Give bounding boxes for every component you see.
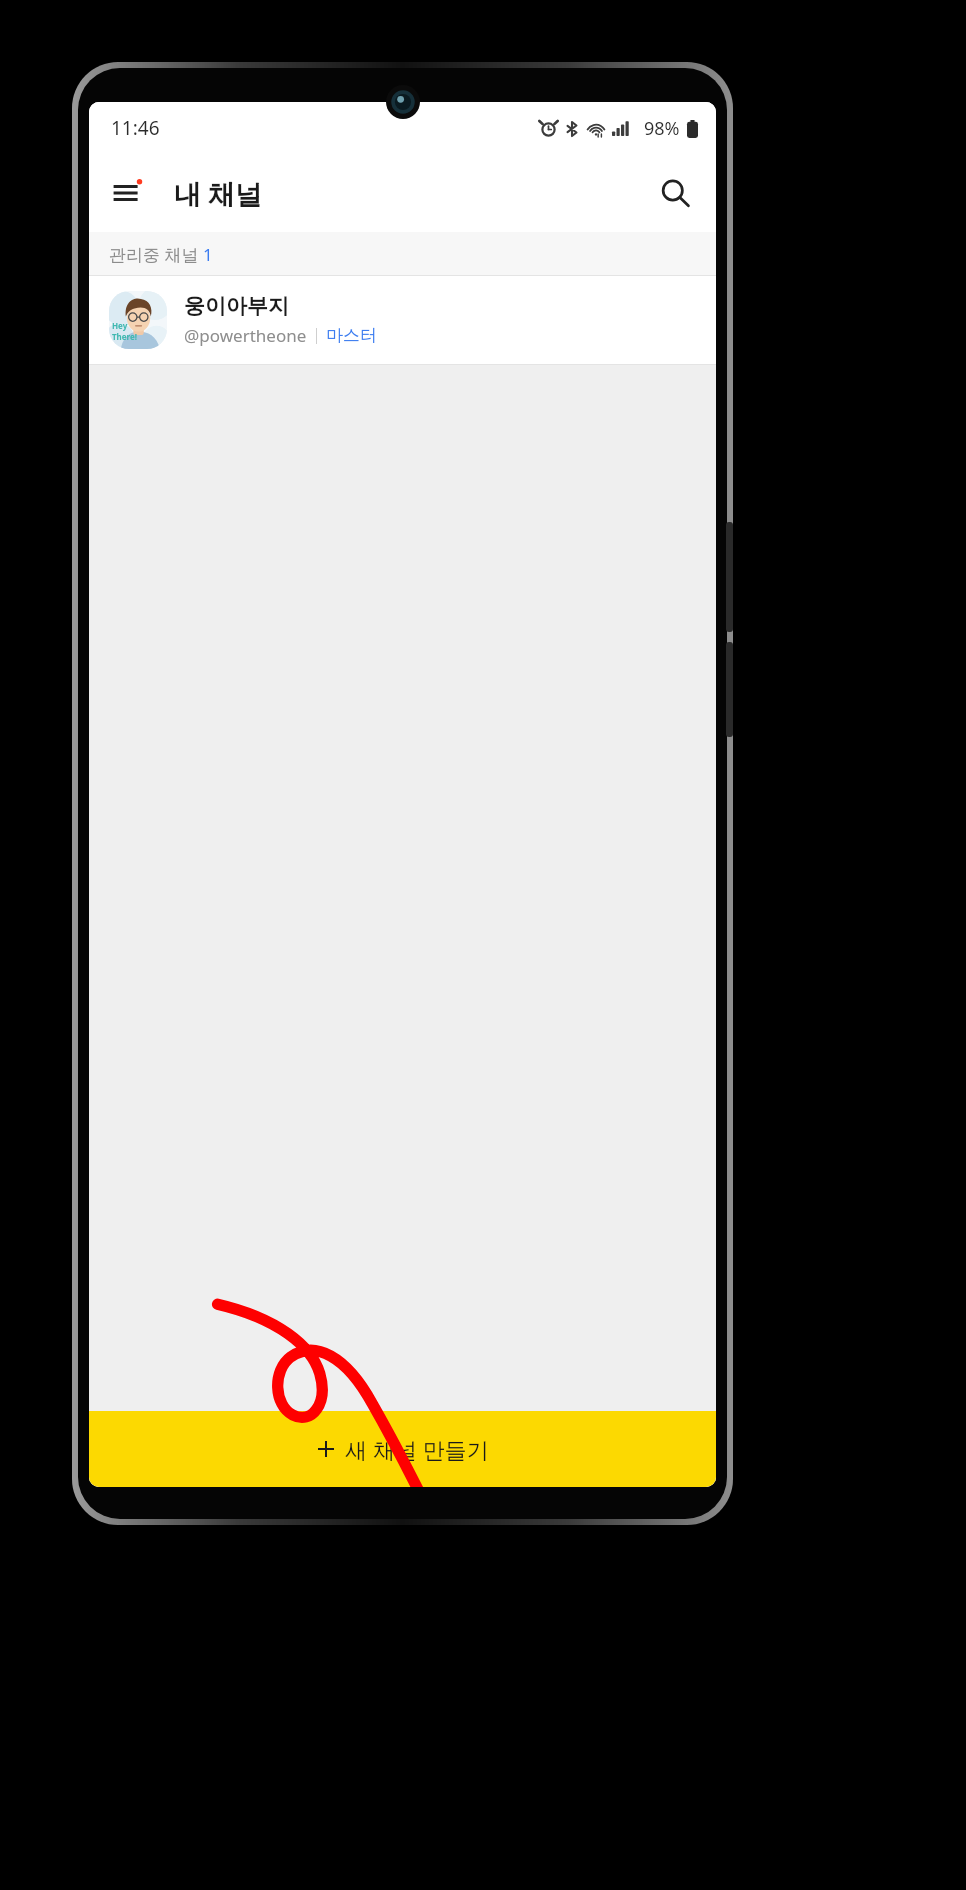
staticText: 웅이아부지 [184, 293, 289, 319]
button[interactable]: 메뉴 [101, 166, 155, 220]
staticText: 새 채널 만들기 [345, 1434, 489, 1464]
staticText: 11:46 [111, 115, 160, 141]
staticText: 관리중 채널 [109, 243, 203, 266]
staticText: 98% [644, 116, 680, 141]
staticText: @powertheone [184, 324, 307, 347]
button[interactable]: 검색 [648, 166, 702, 220]
button[interactable]: Hey [89, 276, 716, 364]
staticText: Hey [112, 320, 128, 331]
staticText: 내 채널 [174, 175, 263, 212]
staticText: 마스터 [326, 325, 377, 346]
button[interactable]: 새 채널 만들기 [89, 1411, 716, 1487]
staticText: 1 [203, 243, 213, 266]
staticText: There! [112, 331, 138, 342]
